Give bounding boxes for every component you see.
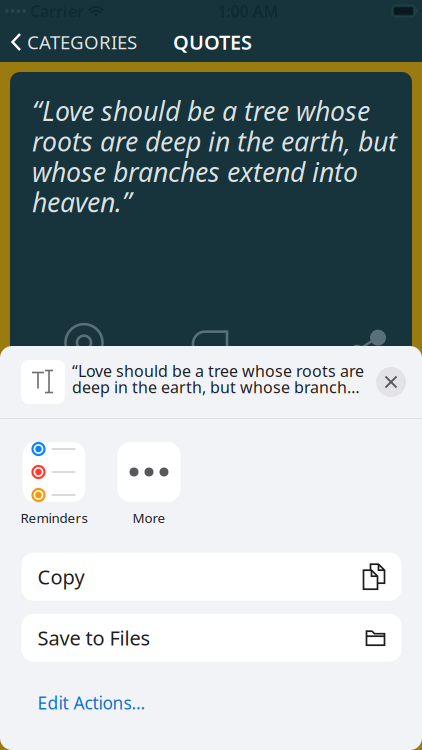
staticText: QUOTES bbox=[173, 29, 252, 55]
staticText: Carrier bbox=[30, 0, 84, 22]
button[interactable]: Save to Files bbox=[21, 614, 401, 662]
button[interactable]: Copy bbox=[21, 553, 401, 601]
button[interactable]: Edit Actions… bbox=[0, 662, 422, 729]
button[interactable]: Reminders bbox=[6, 442, 101, 527]
staticText: 1:00 AM bbox=[217, 0, 278, 22]
staticText: “Love should be a tree whose roots are d… bbox=[72, 360, 368, 398]
staticText: Copy bbox=[37, 563, 84, 590]
staticText: Reminders bbox=[20, 509, 87, 527]
staticText: Edit Actions… bbox=[37, 691, 145, 714]
staticText: Save to Files bbox=[37, 624, 150, 651]
staticText: “Love should be a tree whose roots are d… bbox=[32, 93, 397, 220]
button[interactable]: CATEGORIES bbox=[0, 22, 147, 62]
button[interactable]: Share bbox=[349, 324, 387, 362]
button[interactable]: Views bbox=[65, 324, 103, 362]
button[interactable]: Close bbox=[376, 367, 406, 397]
staticText: More bbox=[132, 509, 165, 527]
button[interactable]: More bbox=[101, 442, 196, 527]
staticText: CATEGORIES bbox=[27, 30, 137, 54]
button[interactable]: Comment bbox=[191, 324, 229, 362]
